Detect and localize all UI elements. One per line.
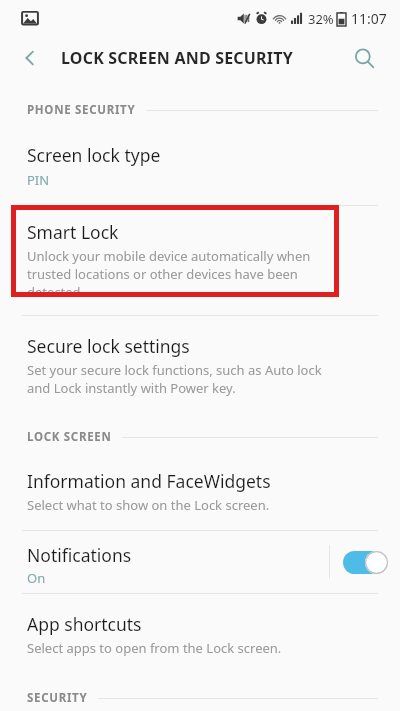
staticText: 11:07 [351, 9, 387, 28]
button[interactable]: Back [8, 36, 52, 80]
button[interactable]: Smart Lock [0, 206, 400, 315]
staticText: PHONE SECURITY [27, 102, 136, 118]
staticText: Screen lock type [27, 143, 161, 167]
button[interactable]: Notifications [0, 531, 329, 593]
staticText: Secure lock settings [27, 334, 190, 358]
staticText: LOCK SCREEN [27, 429, 112, 445]
button[interactable]: Notifications toggle [330, 531, 400, 593]
staticText: Information and FaceWidgets [27, 469, 271, 493]
staticText: PIN [27, 171, 50, 189]
staticText: 32% [308, 10, 334, 28]
staticText: LOCK SCREEN AND SECURITY [61, 47, 293, 69]
staticText: Select apps to open from the Lock screen… [27, 639, 282, 657]
button[interactable]: App shortcuts [0, 594, 400, 673]
button[interactable]: Information and FaceWidgets [0, 445, 400, 530]
button[interactable]: Secure lock settings [0, 316, 400, 415]
button[interactable]: Screen lock type [0, 118, 400, 205]
staticText: Set your secure lock functions, such as … [27, 361, 345, 397]
staticText: Notifications [27, 543, 132, 567]
staticText: On [27, 569, 46, 587]
staticText: App shortcuts [27, 612, 142, 636]
staticText: Unlock your mobile device automatically … [27, 247, 350, 301]
staticText: Select what to show on the Lock screen. [27, 496, 270, 514]
button[interactable]: Search [342, 36, 386, 80]
staticText: SECURITY [27, 690, 88, 706]
staticText: Smart Lock [27, 220, 119, 244]
